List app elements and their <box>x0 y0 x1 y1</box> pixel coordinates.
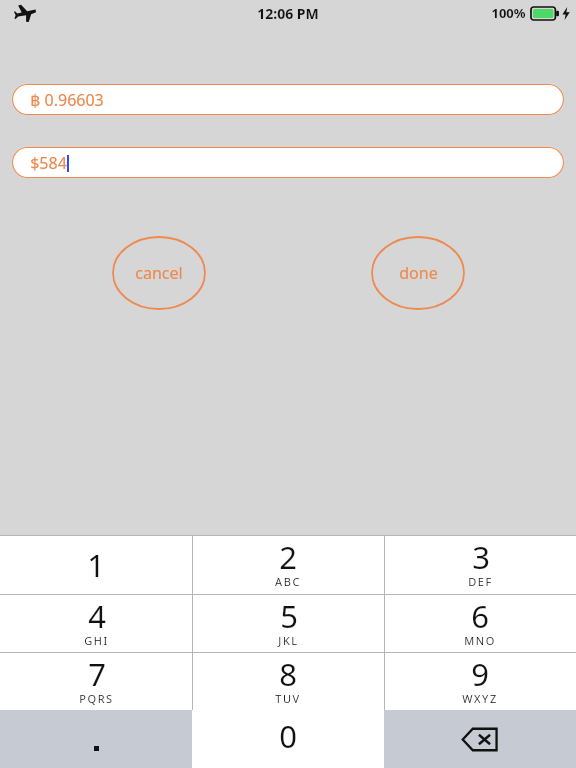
staticText: PQRS <box>79 691 114 706</box>
staticText: DEF <box>468 574 493 589</box>
button[interactable]: $584 <box>12 147 564 178</box>
button[interactable]: ฿ 0.96603 <box>12 84 564 115</box>
button[interactable]: done <box>371 236 465 310</box>
staticText: 2 <box>279 536 297 578</box>
staticText: ฿ 0.96603 <box>30 89 104 111</box>
staticText: 5 <box>280 595 298 637</box>
button[interactable]: 9 <box>384 652 576 710</box>
staticText: 3 <box>472 536 490 578</box>
staticText: done <box>399 262 438 284</box>
staticText: 100% <box>491 4 526 22</box>
staticText: 6 <box>471 595 489 637</box>
staticText: 12:06 PM <box>257 4 319 23</box>
button[interactable]: 2 <box>192 535 384 594</box>
button[interactable]: 3 <box>384 535 576 594</box>
button[interactable]: cancel <box>112 236 206 310</box>
staticText: 7 <box>88 653 106 695</box>
staticText: 4 <box>88 595 106 637</box>
button[interactable]: 6 <box>384 594 576 652</box>
staticText: 9 <box>471 653 489 695</box>
staticText: TUV <box>275 691 301 706</box>
button[interactable]: 8 <box>192 652 384 710</box>
button[interactable]: Backspace <box>384 710 576 768</box>
button[interactable]: 5 <box>192 594 384 652</box>
staticText: ABC <box>275 574 301 589</box>
button[interactable]: 0 <box>192 710 384 768</box>
staticText: MNO <box>464 633 496 648</box>
button[interactable]: 1 <box>0 535 192 594</box>
staticText: $584 <box>30 152 67 174</box>
button[interactable]: Decimal point <box>0 710 192 768</box>
staticText: JKL <box>278 633 299 648</box>
button[interactable]: 7 <box>0 652 192 710</box>
button[interactable]: 4 <box>0 594 192 652</box>
staticText: 8 <box>279 653 297 695</box>
staticText: WXYZ <box>462 691 498 706</box>
staticText: 1 <box>87 544 105 586</box>
staticText: cancel <box>135 262 183 284</box>
staticText: GHI <box>84 633 109 648</box>
staticText: 0 <box>279 715 297 757</box>
